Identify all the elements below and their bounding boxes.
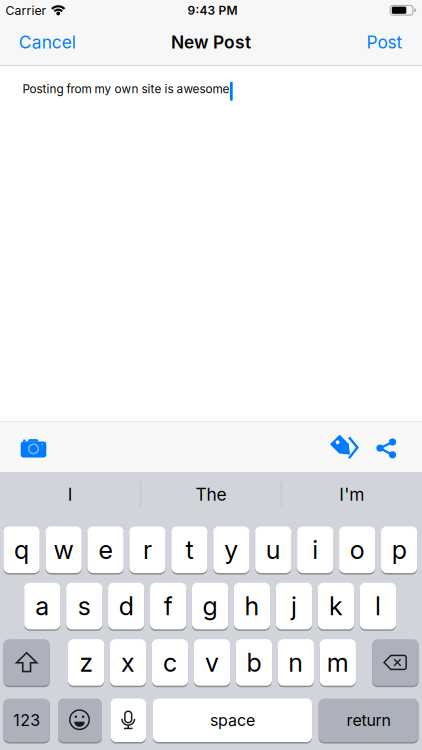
button[interactable]: w [45,526,82,574]
button[interactable]: I [5,474,135,514]
staticText: Carrier [5,3,46,18]
button[interactable]: f [150,583,186,630]
button[interactable]: b [236,639,272,687]
staticText: Posting from my own site is awesome! [22,82,232,96]
button[interactable]: y [213,526,249,574]
staticText: l [375,591,381,621]
staticText: x [121,647,135,677]
button[interactable]: h [234,583,270,630]
button[interactable]: v [194,639,230,687]
staticText: c [163,647,177,677]
button[interactable]: c [152,639,188,687]
button[interactable]: k [318,583,354,630]
button[interactable]: q [3,526,40,574]
button[interactable]: o [339,526,375,574]
button[interactable]: Post [356,26,412,58]
staticText: d [119,591,134,621]
button[interactable]: The [146,474,276,514]
staticText: a [35,591,49,621]
staticText: space [210,711,255,730]
staticText: h [244,591,259,621]
staticText: I [68,484,73,505]
staticText: s [78,591,91,621]
staticText: k [329,591,343,621]
staticText: Post [366,32,402,52]
button[interactable]: Share [369,427,403,467]
staticText: j [291,591,297,621]
button[interactable]: g [192,583,228,630]
button[interactable]: e [87,526,124,574]
staticText: return [347,711,391,730]
staticText: g [203,591,218,621]
button[interactable]: p [381,526,417,574]
staticText: i [312,535,318,565]
staticText: o [350,535,365,565]
button[interactable]: I'm [287,474,417,514]
button[interactable]: z [68,639,104,687]
staticText: v [205,647,219,677]
staticText: The [195,484,226,505]
button[interactable]: j [276,583,312,630]
staticText: 123 [13,711,40,730]
button[interactable]: u [255,526,291,574]
staticText: w [54,535,74,565]
staticText: m [327,647,349,677]
staticText: f [164,591,173,621]
staticText: 9:43 PM [187,3,237,17]
button[interactable]: n [278,639,314,687]
staticText: I'm [339,484,364,505]
button[interactable]: return [319,698,418,743]
staticText: e [98,535,112,565]
button[interactable]: Numbers [3,698,50,743]
button[interactable]: Tags [325,428,363,468]
button[interactable]: a [24,583,60,630]
staticText: Cancel [19,32,76,52]
staticText: r [143,535,152,565]
staticText: n [288,647,303,677]
staticText: b [246,647,261,677]
button[interactable]: s [66,583,102,630]
button[interactable]: d [108,583,144,630]
button[interactable]: space [153,698,312,743]
button[interactable]: Cancel [9,26,85,58]
button[interactable]: Delete [372,639,418,687]
staticText: New Post [171,32,251,52]
button[interactable]: r [129,526,166,574]
button[interactable]: l [360,583,396,630]
button[interactable]: Emoji [58,698,102,743]
button[interactable]: x [110,639,146,687]
staticText: t [185,535,193,565]
button[interactable]: Dictate [110,698,146,743]
staticText: q [14,535,29,565]
button[interactable]: Add photo [11,428,55,468]
staticText: z [80,647,93,677]
staticText: p [392,535,407,565]
staticText: y [224,535,238,565]
button[interactable]: i [297,526,333,574]
button[interactable]: m [320,639,356,687]
staticText: u [266,535,281,565]
button[interactable]: Shift [3,639,50,687]
button[interactable]: t [171,526,207,574]
